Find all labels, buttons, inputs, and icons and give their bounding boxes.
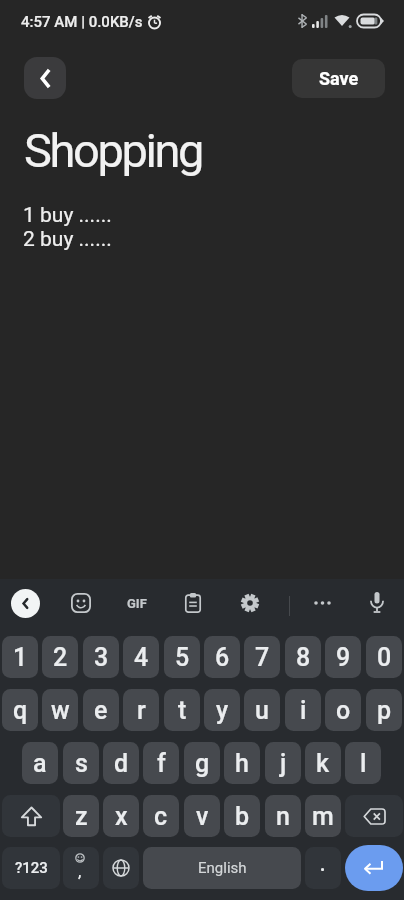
staticText: t (178, 696, 187, 725)
button[interactable]: 0 (366, 636, 402, 678)
button[interactable]: n (265, 795, 301, 837)
button[interactable] (11, 589, 40, 618)
button[interactable]: x (103, 795, 139, 837)
button[interactable]: h (224, 742, 260, 784)
button[interactable]: f (143, 742, 179, 784)
staticText: d (114, 749, 129, 778)
button[interactable]: s (63, 742, 99, 784)
button[interactable] (345, 795, 403, 837)
staticText: r (137, 696, 146, 725)
button[interactable]: w (42, 689, 78, 731)
button[interactable]: 8 (285, 636, 321, 678)
button[interactable]: t (164, 689, 200, 731)
button[interactable]: p (366, 689, 402, 731)
staticText: i (300, 696, 307, 725)
button[interactable] (365, 590, 389, 614)
button[interactable] (103, 847, 139, 889)
button[interactable] (238, 591, 262, 615)
staticText: y (216, 696, 229, 725)
button[interactable]: 2 (42, 636, 78, 678)
button[interactable]: Save (292, 59, 385, 98)
button[interactable]: d (103, 742, 139, 784)
staticText: j (280, 749, 287, 778)
staticText: 4 (134, 643, 149, 672)
button[interactable]: c (143, 795, 179, 837)
button[interactable]: . (305, 847, 341, 889)
button[interactable]: r (123, 689, 159, 731)
staticText: w (51, 696, 70, 725)
staticText: s (75, 749, 88, 778)
staticText: 7 (255, 643, 270, 672)
staticText: k (316, 749, 330, 778)
button[interactable]: 6 (204, 636, 240, 678)
staticText: q (13, 696, 28, 725)
staticText: 1 buy ...... (23, 203, 112, 228)
button[interactable]: i (285, 689, 321, 731)
staticText: f (157, 749, 166, 778)
button[interactable]: o (325, 689, 361, 731)
button[interactable] (69, 591, 93, 615)
staticText: GIF (127, 596, 147, 611)
staticText: p (377, 696, 392, 725)
button[interactable] (24, 57, 66, 99)
button[interactable] (2, 795, 60, 837)
staticText: a (33, 749, 47, 778)
staticText: c (154, 802, 168, 831)
staticText: , (78, 861, 82, 881)
staticText: 0 (377, 643, 392, 672)
button[interactable]: English (143, 847, 301, 889)
staticText: 5 (175, 643, 190, 672)
staticText: z (75, 802, 88, 831)
button[interactable]: m (305, 795, 341, 837)
staticText: 3 (94, 643, 109, 672)
staticText: g (195, 749, 210, 778)
staticText: English (198, 859, 247, 877)
staticText: 2 buy ...... (23, 227, 112, 252)
button[interactable]: l (345, 742, 381, 784)
button[interactable]: q (2, 689, 38, 731)
staticText: x (115, 802, 128, 831)
button[interactable] (310, 591, 334, 615)
staticText: l (360, 749, 367, 778)
staticText: 2 (53, 643, 68, 672)
button[interactable]: 9 (325, 636, 361, 678)
button[interactable]: j (265, 742, 301, 784)
button[interactable]: z (63, 795, 99, 837)
staticText: 6 (215, 643, 230, 672)
button[interactable]: e (83, 689, 119, 731)
button[interactable]: 4 (123, 636, 159, 678)
button[interactable]: a (22, 742, 58, 784)
button[interactable]: GIF (120, 591, 154, 615)
button[interactable]: 1 (2, 636, 38, 678)
button[interactable]: u (244, 689, 280, 731)
button[interactable]: 7 (244, 636, 280, 678)
staticText: e (94, 696, 108, 725)
button[interactable]: k (305, 742, 341, 784)
button[interactable] (345, 845, 403, 891)
button[interactable]: y (204, 689, 240, 731)
staticText: u (255, 696, 269, 725)
button[interactable]: b (224, 795, 260, 837)
button[interactable]: v (184, 795, 220, 837)
staticText: n (276, 802, 290, 831)
button[interactable] (181, 591, 205, 615)
staticText: m (312, 802, 334, 831)
button[interactable]: 5 (164, 636, 200, 678)
staticText: Shopping (24, 123, 202, 178)
staticText: . (320, 854, 326, 875)
staticText: h (235, 749, 249, 778)
staticText: 1 (13, 643, 28, 672)
staticText: 8 (296, 643, 311, 672)
button[interactable]: , (63, 847, 99, 889)
staticText: ?123 (15, 859, 48, 877)
button[interactable]: g (184, 742, 220, 784)
staticText: Save (319, 68, 359, 89)
staticText: b (235, 802, 250, 831)
button[interactable]: ?123 (2, 847, 60, 889)
staticText: 9 (336, 643, 351, 672)
staticText: o (336, 696, 351, 725)
staticText: v (196, 802, 209, 831)
staticText: 4:57 AM | 0.0KB/s (21, 13, 143, 31)
button[interactable]: 3 (83, 636, 119, 678)
